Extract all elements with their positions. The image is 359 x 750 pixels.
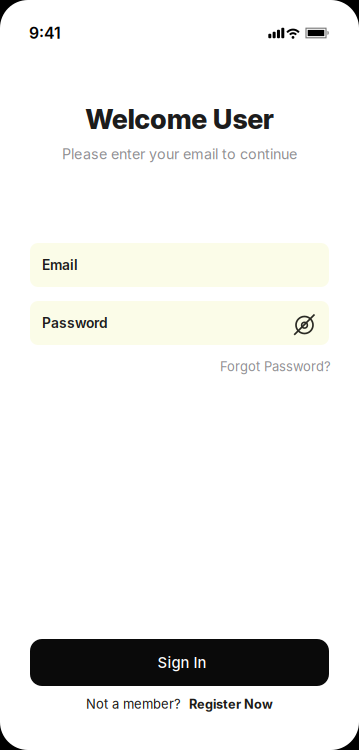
staticText: Not a member? Register Now: [86, 696, 273, 712]
button[interactable]: Email: [30, 243, 329, 287]
button[interactable]: Forgot Password?: [220, 358, 331, 374]
staticText: Forgot Password?: [220, 359, 331, 374]
button[interactable]: Not a member? Register Now: [86, 696, 273, 712]
button[interactable]: Show password: [294, 314, 315, 335]
staticText: Password: [42, 315, 108, 331]
button[interactable]: Sign In: [30, 639, 329, 686]
button[interactable]: Password: [30, 301, 329, 345]
staticText: Email: [42, 257, 78, 273]
staticText: 9:41: [29, 23, 61, 42]
staticText: Sign In: [157, 653, 206, 671]
staticText: Please enter your email to continue: [62, 145, 297, 163]
staticText: Welcome User: [85, 102, 274, 135]
